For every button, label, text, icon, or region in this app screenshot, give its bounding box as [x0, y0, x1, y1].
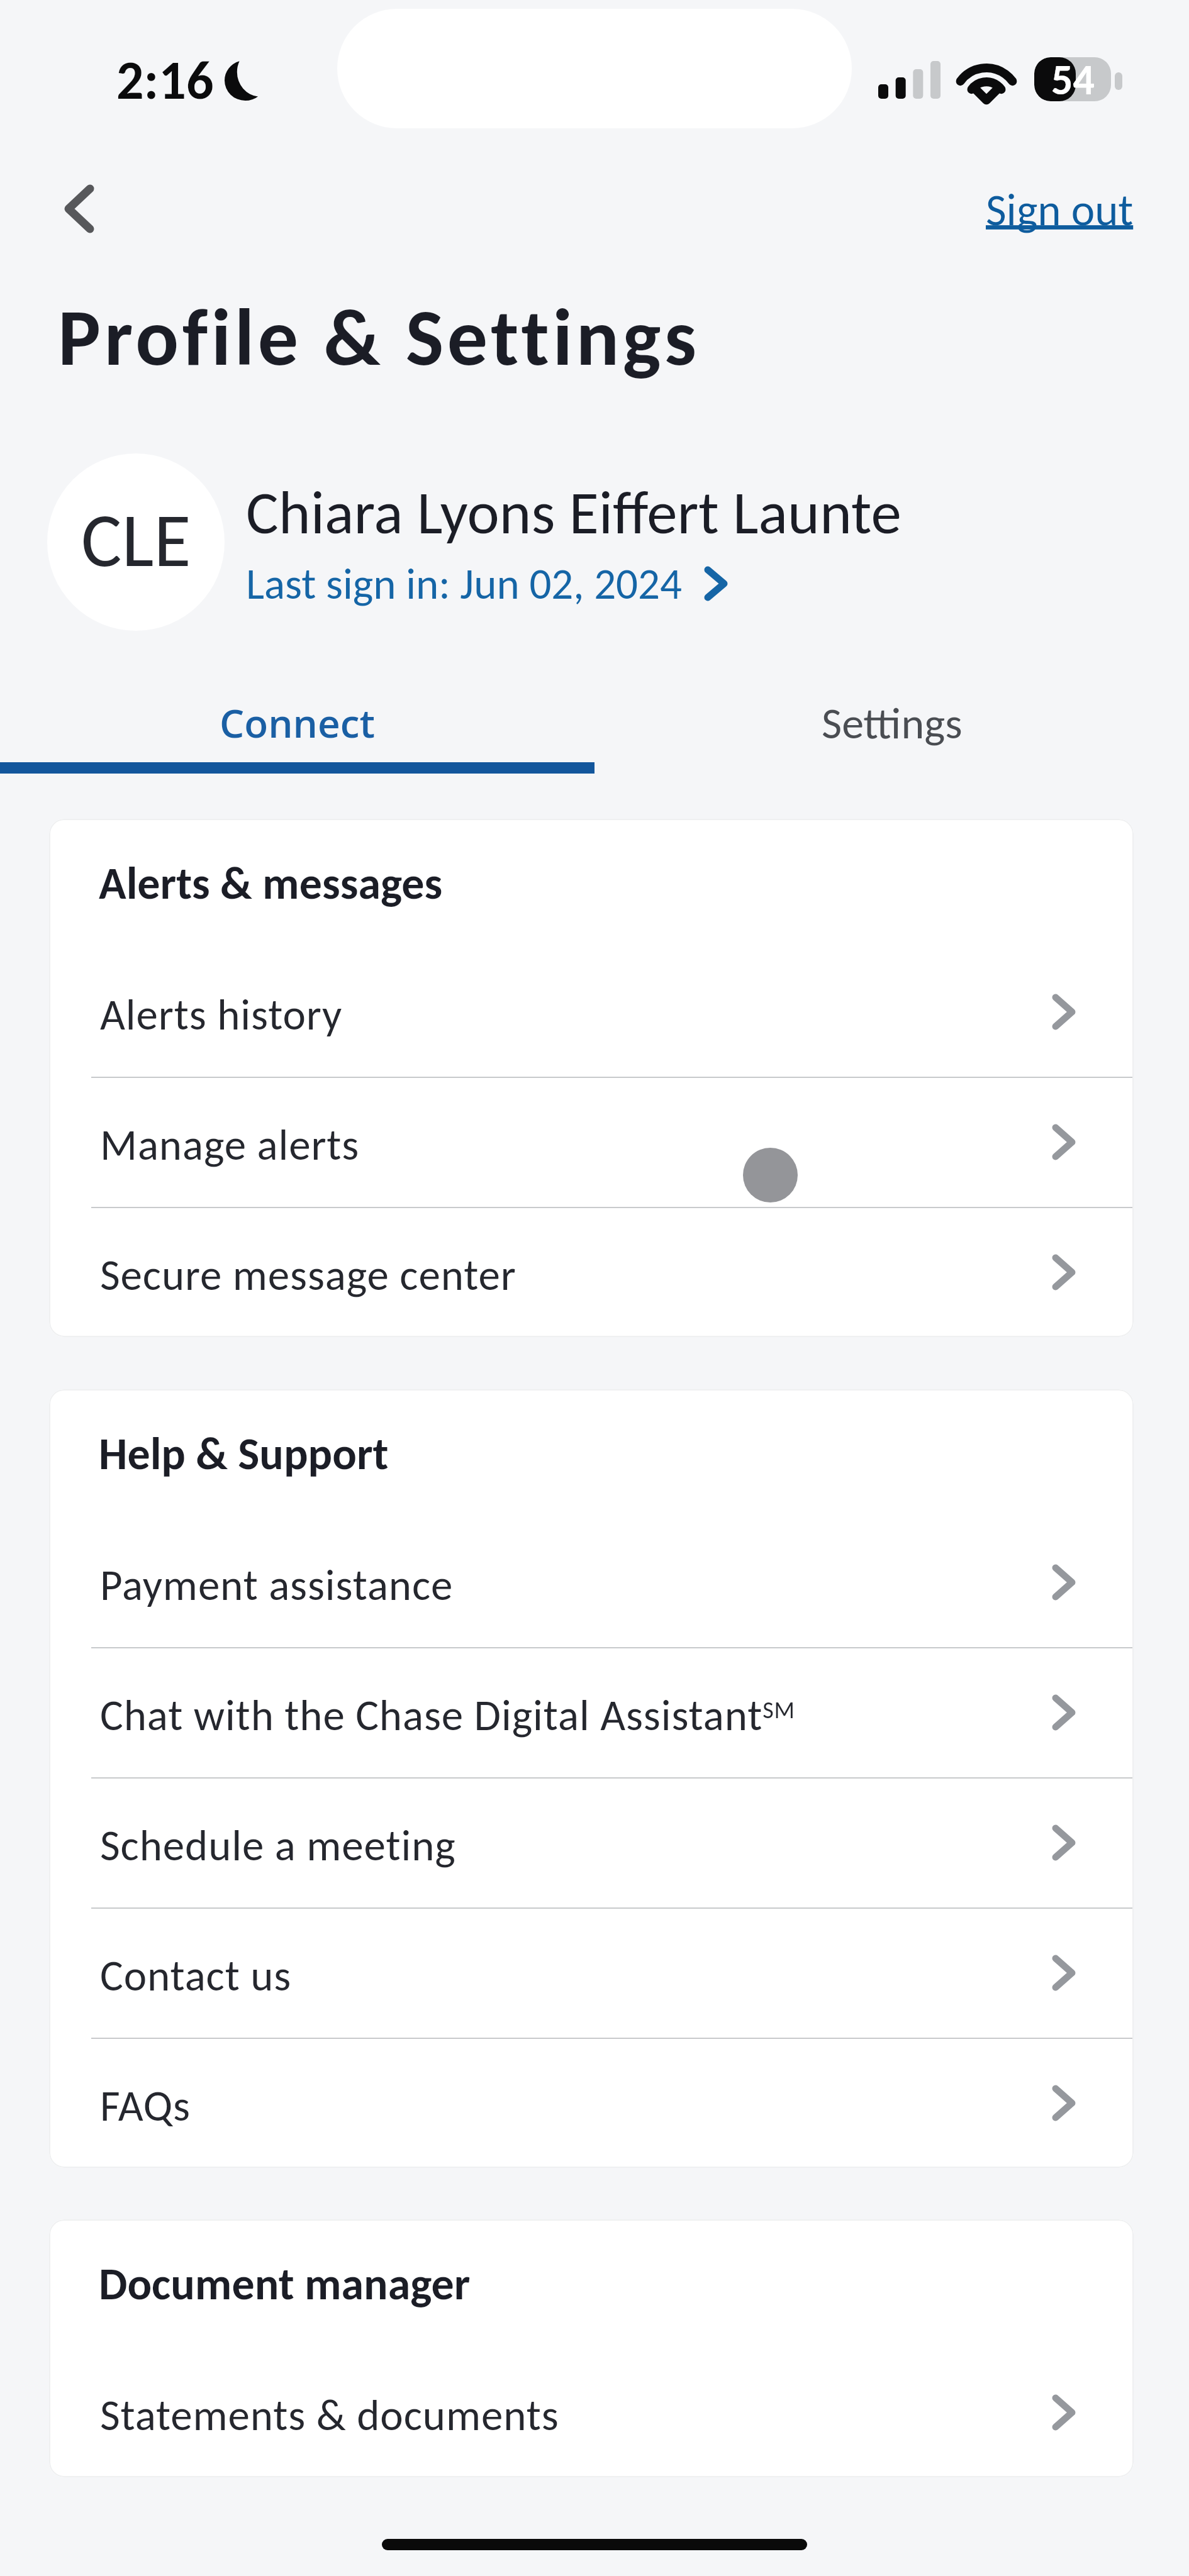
button[interactable]: FAQs — [49, 2038, 1134, 2168]
button[interactable]: Manage alerts — [49, 1077, 1134, 1207]
button[interactable]: Schedule a meeting — [49, 1777, 1134, 1907]
staticText: 2:16 — [116, 47, 214, 113]
staticText: Payment assistance — [100, 1558, 454, 1611]
staticText: Secure message center — [100, 1248, 516, 1301]
staticText: Alerts history — [100, 988, 343, 1041]
staticText: Last sign in: Jun 02, 2024 — [246, 557, 683, 610]
staticText: Alerts & messages — [99, 855, 443, 911]
button[interactable]: Contact us — [49, 1907, 1134, 2038]
staticText: Statements & documents — [100, 2389, 559, 2441]
button[interactable]: Settings — [594, 682, 1189, 774]
staticText: Help & Support — [99, 1426, 389, 1481]
button[interactable]: CLE — [38, 440, 931, 640]
staticText: Document manager — [99, 2256, 471, 2311]
staticText: Settings — [822, 696, 963, 750]
staticText: Sign out — [986, 182, 1134, 237]
staticText: CLE — [81, 494, 191, 587]
staticText: Connect — [220, 696, 375, 749]
button[interactable]: Sign out — [951, 175, 1134, 244]
button[interactable]: Back — [40, 170, 118, 247]
staticText: Chat with the Chase Digital AssistantSM — [100, 1689, 795, 1741]
staticText: Manage alerts — [100, 1118, 360, 1171]
staticText: 54 — [1051, 57, 1095, 97]
button[interactable]: Alerts history — [49, 947, 1134, 1077]
staticText: FAQs — [100, 2079, 191, 2132]
staticText: Chiara Lyons Eiffert Launte — [246, 475, 902, 550]
button[interactable]: Statements & documents — [49, 2347, 1134, 2477]
staticText: Profile & Settings — [58, 288, 700, 386]
staticText: Schedule a meeting — [100, 1819, 456, 1872]
button[interactable]: Connect — [0, 682, 594, 774]
button[interactable]: Payment assistance — [49, 1517, 1134, 1647]
button[interactable]: Chat with the Chase Digital AssistantSM — [49, 1647, 1134, 1777]
staticText: Contact us — [100, 1949, 292, 2002]
button[interactable]: Secure message center — [49, 1207, 1134, 1337]
